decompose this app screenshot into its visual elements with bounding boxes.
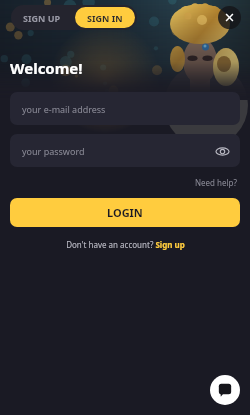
button[interactable]: your e-mail address xyxy=(10,92,240,125)
staticText: your e-mail address xyxy=(22,103,106,115)
staticText: SIGN IN xyxy=(87,12,123,24)
button[interactable]: Need help? xyxy=(193,175,240,190)
button[interactable]: SIGN UP xyxy=(11,5,73,30)
button[interactable]: Don't have an account? Sign up xyxy=(0,239,250,250)
staticText: SIGN UP xyxy=(23,12,61,24)
button[interactable]: your password xyxy=(10,134,240,167)
button[interactable]: SIGN IN xyxy=(75,7,135,28)
button[interactable]: Close xyxy=(218,6,241,29)
staticText: Need help? xyxy=(195,177,238,188)
button[interactable]: Open chat xyxy=(210,375,240,405)
staticText: Welcome! xyxy=(10,58,83,78)
staticText: LOGIN xyxy=(107,205,143,220)
button[interactable]: LOGIN xyxy=(10,198,240,227)
button[interactable]: Show password xyxy=(212,141,232,161)
staticText: your password xyxy=(22,145,85,157)
staticText: Don't have an account? Sign up xyxy=(66,239,185,250)
